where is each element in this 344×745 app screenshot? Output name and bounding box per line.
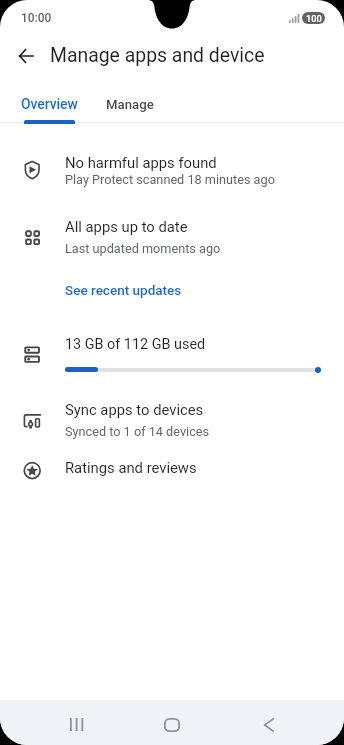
- staticText: Play Protect scanned 18 minutes ago: [65, 172, 275, 187]
- staticText: Last updated moments ago: [65, 241, 221, 256]
- staticText: 13 GB of 112 GB used: [65, 336, 206, 353]
- button[interactable]: Back: [245, 702, 293, 745]
- button[interactable]: See recent updates: [57, 274, 190, 306]
- button[interactable]: Manage: [96, 84, 164, 124]
- staticText: 10:00: [21, 11, 52, 25]
- staticText: Overview: [21, 96, 78, 112]
- staticText: 100: [306, 13, 322, 24]
- button[interactable]: [0, 148, 344, 192]
- staticText: All apps up to date: [65, 218, 188, 235]
- staticText: No harmful apps found: [65, 154, 217, 171]
- staticText: Ratings and reviews: [65, 459, 197, 476]
- staticText: Manage apps and device: [50, 44, 265, 67]
- button[interactable]: Home: [148, 702, 196, 745]
- button[interactable]: [0, 213, 344, 257]
- button[interactable]: Overview: [8, 84, 90, 124]
- button[interactable]: [0, 335, 344, 381]
- staticText: Sync apps to devices: [65, 401, 204, 418]
- button[interactable]: [0, 452, 344, 488]
- staticText: See recent updates: [65, 282, 182, 298]
- staticText: Synced to 1 of 14 devices: [65, 424, 210, 439]
- button[interactable]: Back: [8, 38, 43, 73]
- button[interactable]: [0, 396, 344, 440]
- button[interactable]: Recent apps: [52, 702, 100, 745]
- staticText: Manage: [106, 97, 154, 112]
